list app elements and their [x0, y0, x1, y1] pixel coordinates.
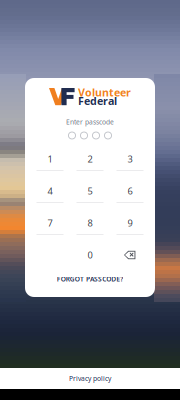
button[interactable]: FORGOT PASSCODE? [35, 273, 145, 285]
button[interactable]: 8 [70, 212, 110, 244]
button[interactable]: 1 [30, 148, 70, 180]
button[interactable]: Privacy policy [0, 368, 180, 389]
button[interactable]: Delete [110, 244, 150, 276]
button[interactable]: 3 [110, 148, 150, 180]
button[interactable]: 9 [110, 212, 150, 244]
staticText: 1 [47, 153, 52, 165]
button[interactable]: 6 [110, 180, 150, 212]
staticText: 2 [87, 153, 92, 165]
staticText: 6 [127, 185, 132, 197]
staticText: Privacy policy [69, 374, 111, 383]
staticText: Enter passcode [66, 118, 114, 126]
staticText: FORGOT PASSCODE? [57, 275, 123, 283]
staticText: 9 [127, 217, 132, 229]
staticText: 4 [47, 185, 52, 197]
button[interactable]: 4 [30, 180, 70, 212]
button[interactable]: 2 [70, 148, 110, 180]
button[interactable]: 5 [70, 180, 110, 212]
staticText: 7 [47, 217, 52, 229]
button[interactable]: 7 [30, 212, 70, 244]
staticText: 3 [127, 153, 132, 165]
staticText: 8 [87, 217, 92, 229]
staticText: 5 [87, 185, 92, 197]
staticText: Federal [78, 94, 117, 108]
staticText: Volunteer [78, 85, 131, 99]
button[interactable]: 0 [70, 244, 110, 276]
staticText: 0 [87, 249, 92, 261]
